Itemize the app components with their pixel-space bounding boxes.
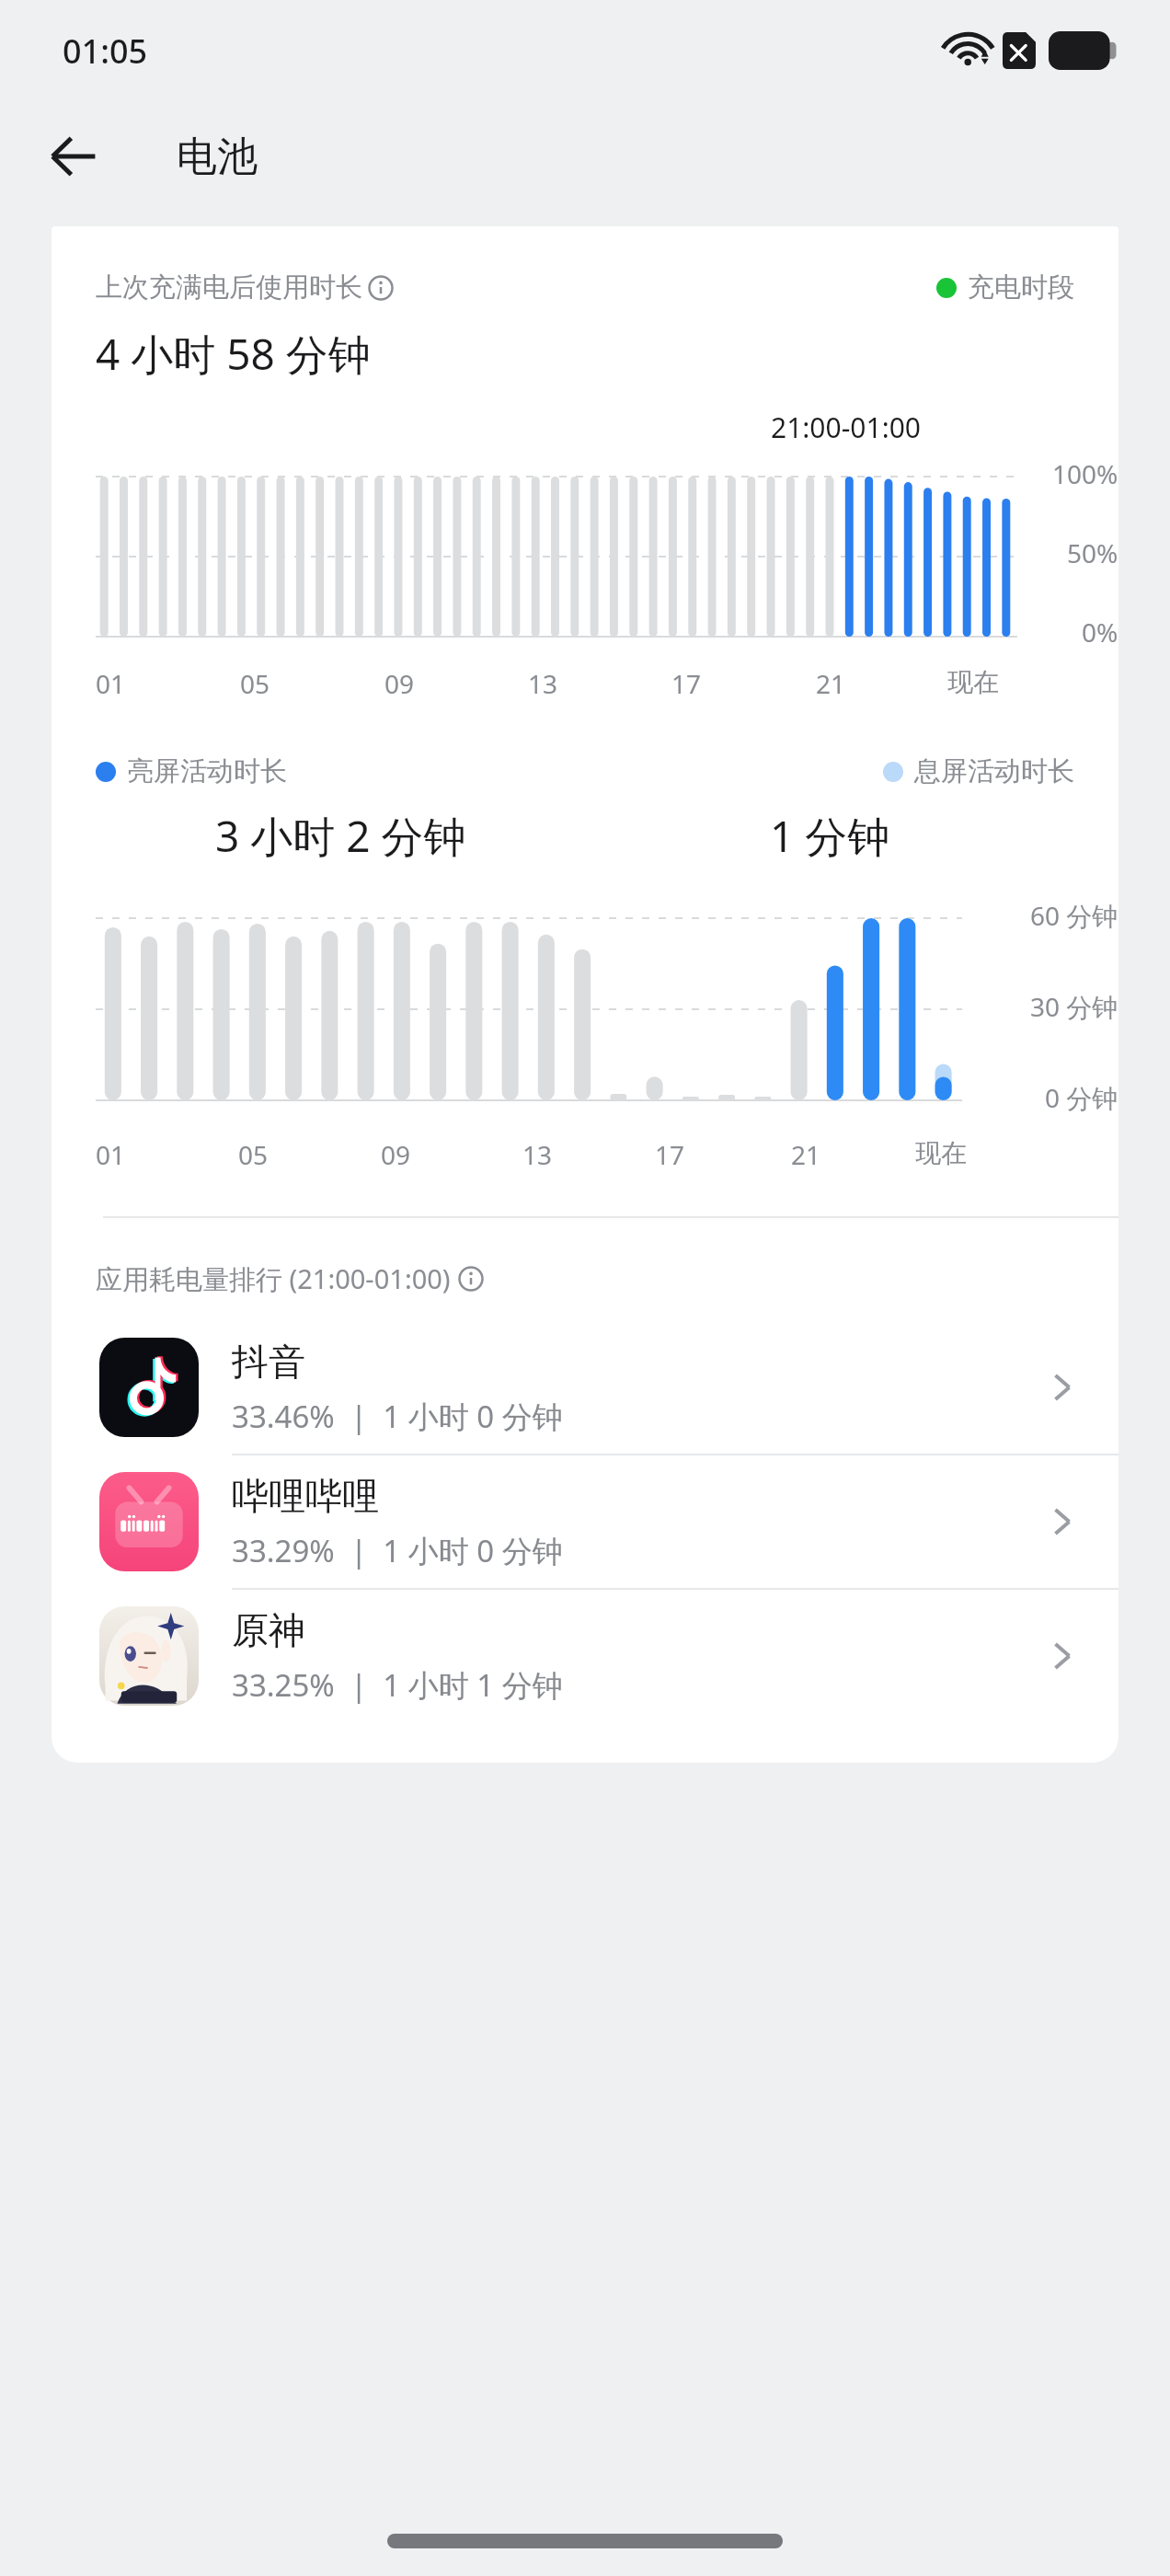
staticText: 3 小时 2 分钟 [215, 807, 466, 865]
staticText: 0% [1082, 615, 1118, 650]
staticText: 60 分钟 [1030, 898, 1118, 933]
staticText: 21:00-01:00 [771, 408, 922, 446]
staticText: 09 [384, 666, 415, 701]
button[interactable]: 抖音 [52, 1321, 1118, 1454]
staticText: 现在 [947, 666, 999, 698]
staticText: 01:05 [63, 29, 148, 74]
staticText: 17 [671, 666, 702, 701]
staticText: 4 小时 58 分钟 [96, 325, 371, 383]
staticText: 33.29% | 1 小时 0 分钟 [232, 1530, 563, 1571]
button[interactable]: 原神 [52, 1590, 1118, 1722]
button[interactable]: Back [37, 120, 110, 193]
staticText: 亮屏活动时长 [127, 754, 287, 788]
staticText: 05 [240, 666, 270, 701]
staticText: 充电时段 [968, 270, 1074, 305]
staticText: 电池 [177, 132, 258, 182]
staticText: 01 [96, 666, 126, 701]
staticText: 17 [655, 1137, 685, 1172]
staticText: 50% [1067, 535, 1118, 570]
staticText: 05 [238, 1137, 269, 1172]
staticText: 1 分钟 [770, 807, 890, 865]
staticText: 21 [791, 1137, 821, 1172]
staticText: 13 [528, 666, 558, 701]
staticText: 33.46% | 1 小时 0 分钟 [232, 1396, 563, 1437]
staticText: 上次充满电后使用时长 [96, 270, 362, 305]
staticText: 现在 [915, 1137, 967, 1169]
staticText: 21 [816, 666, 846, 701]
staticText: 原神 [232, 1607, 305, 1653]
staticText: 01 [96, 1137, 126, 1172]
staticText: 33.25% | 1 小时 1 分钟 [232, 1664, 563, 1706]
staticText: 09 [381, 1137, 411, 1172]
staticText: 息屏活动时长 [914, 754, 1074, 788]
staticText: 0 分钟 [1045, 1080, 1118, 1115]
staticText: 30 分钟 [1030, 989, 1118, 1024]
button[interactable]: 哔哩哔哩 [52, 1455, 1118, 1588]
staticText: 哔哩哔哩 [232, 1473, 379, 1519]
staticText: 13 [522, 1137, 553, 1172]
staticText: 应用耗电量排行 (21:00-01:00) [96, 1260, 451, 1297]
staticText: 100% [1052, 456, 1118, 491]
staticText: 抖音 [232, 1339, 305, 1385]
